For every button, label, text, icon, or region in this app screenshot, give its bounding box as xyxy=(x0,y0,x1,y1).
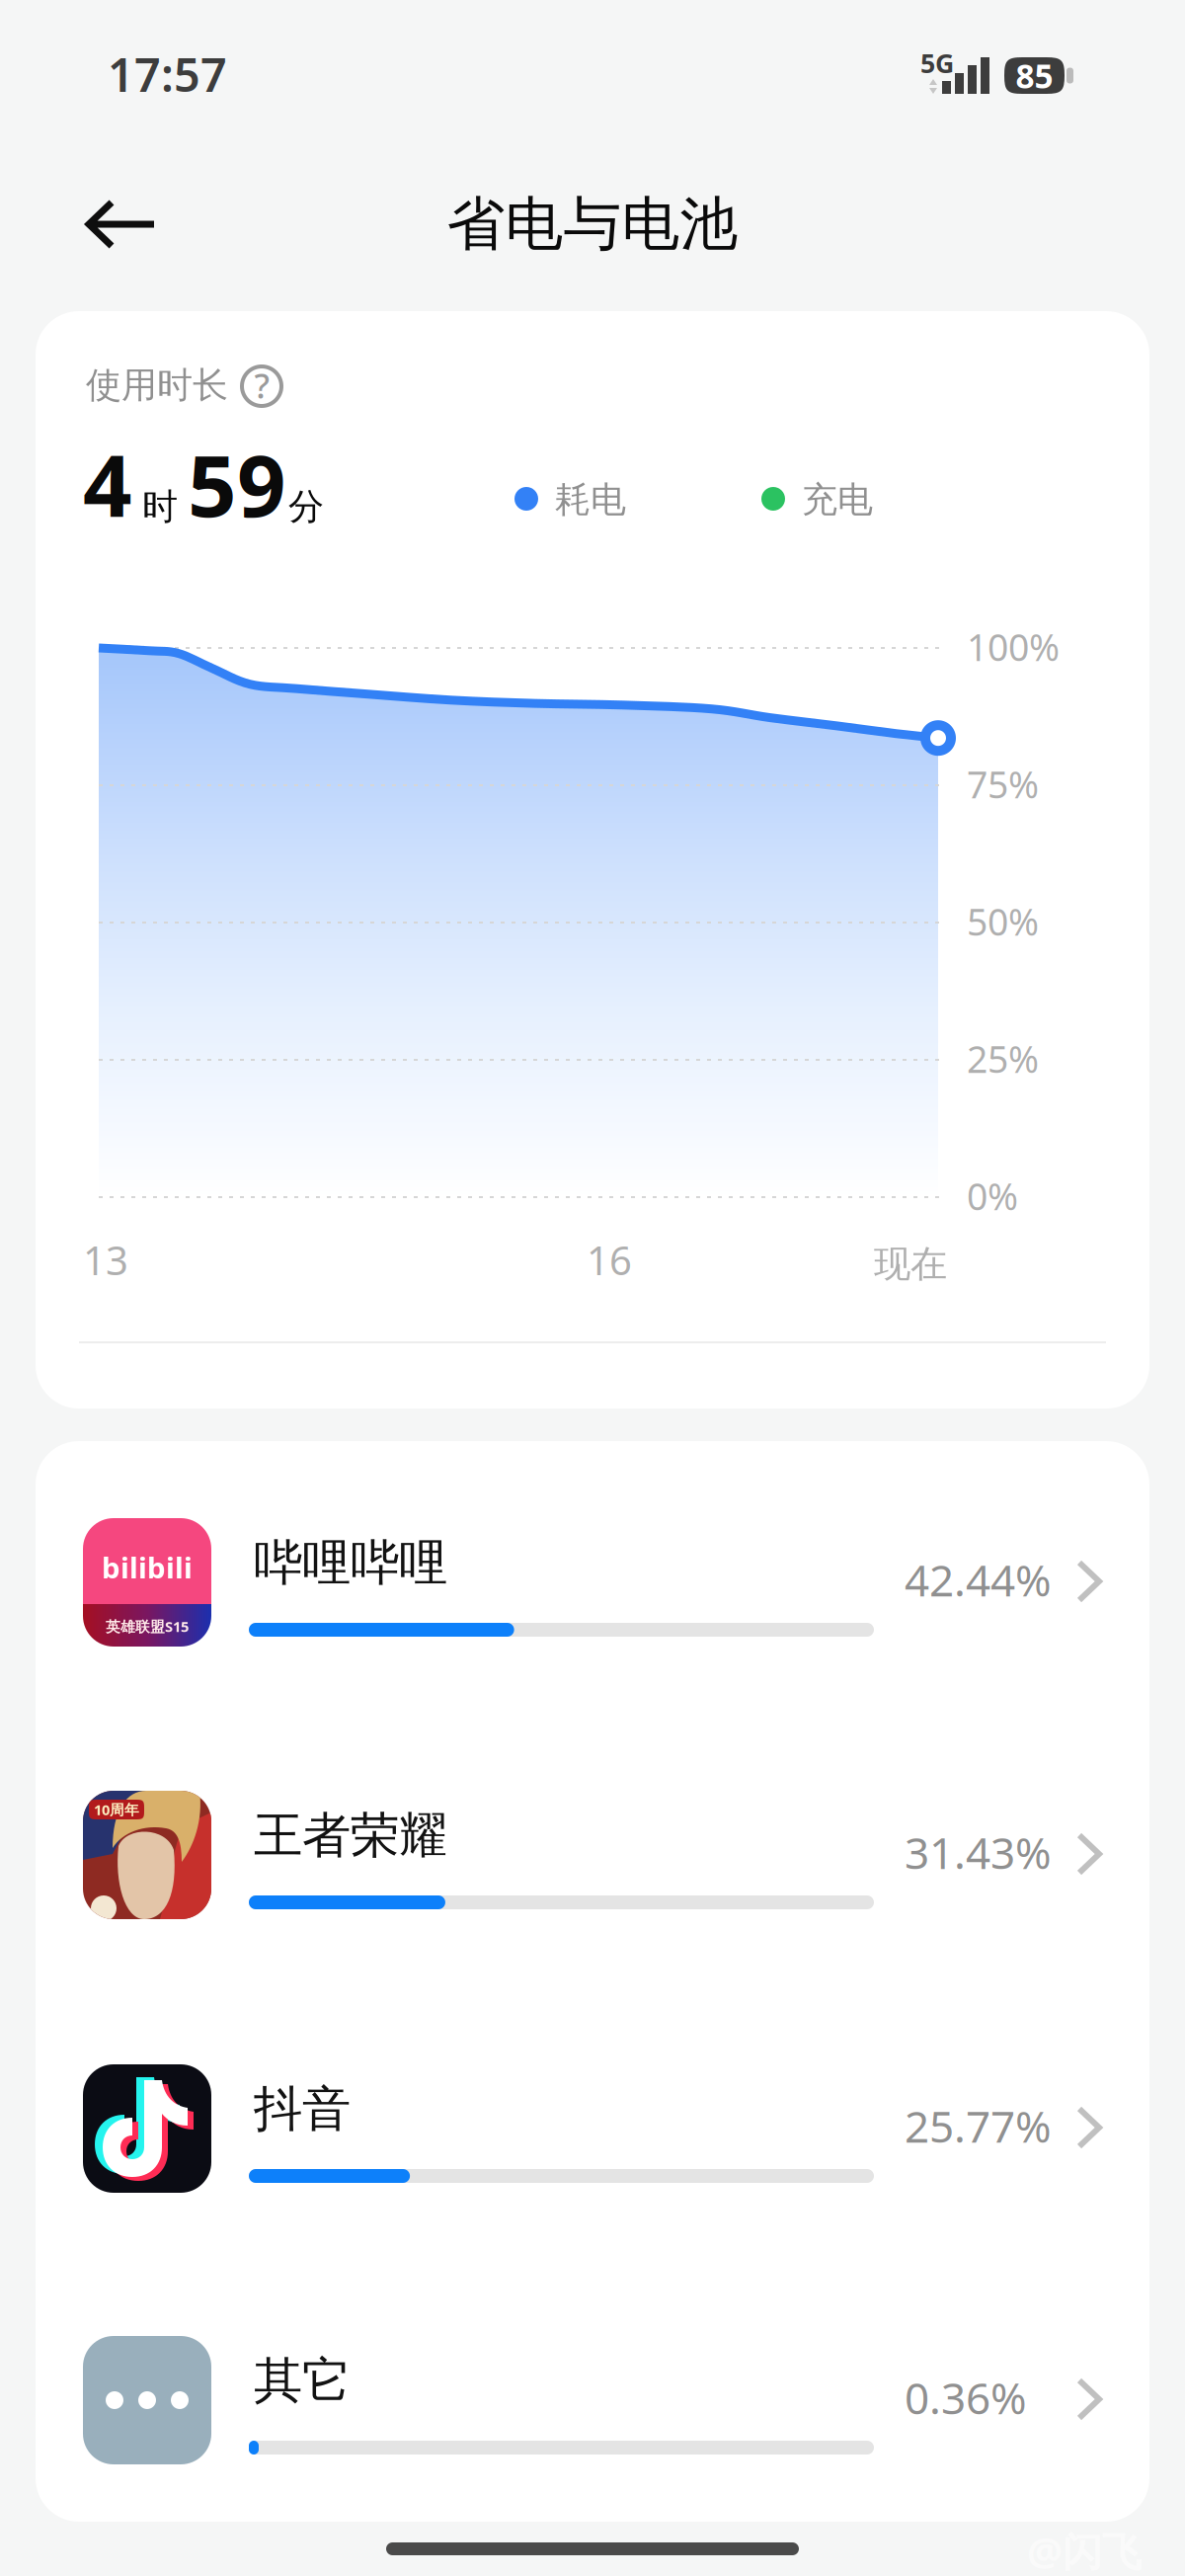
staticText: 5G xyxy=(920,45,954,80)
staticText: 75% xyxy=(967,760,1039,809)
staticText: 100% xyxy=(967,622,1060,671)
staticText: 省电与电池 xyxy=(447,189,738,260)
staticText: 其它 xyxy=(254,2351,351,2411)
staticText: 分 xyxy=(288,485,324,529)
staticText: 25.77% xyxy=(905,2097,1052,2155)
staticText: 王者荣耀 xyxy=(254,1806,447,1865)
staticText: 16 xyxy=(587,1234,632,1286)
staticText: 哔哩哔哩 xyxy=(254,1533,447,1593)
staticText: ? xyxy=(254,362,269,408)
staticText: 充电 xyxy=(802,478,873,522)
button[interactable]: 抖音 xyxy=(36,2045,1149,2213)
button[interactable]: 返回 xyxy=(61,176,182,273)
staticText: 时 xyxy=(142,485,178,529)
staticText: 现在 xyxy=(874,1242,947,1287)
staticText: 0% xyxy=(967,1171,1018,1220)
staticText: 42.44% xyxy=(905,1551,1052,1608)
staticText: 25% xyxy=(967,1034,1039,1083)
staticText: 使用时长 xyxy=(86,363,228,407)
button[interactable]: bilibili xyxy=(36,1498,1149,1666)
staticText: bilibili xyxy=(102,1548,193,1586)
staticText: 4 xyxy=(83,427,132,540)
staticText: 13 xyxy=(83,1234,128,1286)
staticText: 85 xyxy=(1016,54,1053,97)
staticText: 耗电 xyxy=(555,478,626,522)
staticText: 17:57 xyxy=(108,43,227,105)
button[interactable]: 其它 xyxy=(36,2316,1149,2484)
staticText: 0.36% xyxy=(905,2369,1027,2426)
staticText: 抖音 xyxy=(254,2079,351,2139)
staticText: 50% xyxy=(967,897,1039,946)
staticText: 59 xyxy=(188,427,286,540)
staticText: 10周年 xyxy=(94,1800,139,1819)
button[interactable]: 10周年 xyxy=(36,1771,1149,1939)
staticText: 英雄联盟S15 xyxy=(106,1617,189,1636)
staticText: 31.43% xyxy=(905,1823,1052,1881)
